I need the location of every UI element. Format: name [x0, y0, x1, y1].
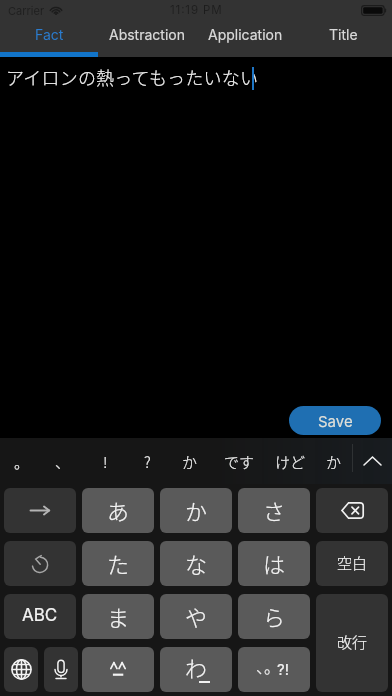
- staticText: は: [263, 547, 286, 579]
- button[interactable]: 、: [238, 647, 310, 692]
- button[interactable]: !: [84, 438, 126, 484]
- staticText: た: [107, 547, 130, 579]
- staticText: アイロンの熱ってもったいない: [6, 64, 259, 90]
- button[interactable]: ま: [82, 594, 154, 639]
- button[interactable]: Show more candidates: [353, 438, 392, 484]
- button[interactable]: Next candidate: [4, 488, 76, 533]
- button[interactable]: か: [169, 438, 211, 484]
- staticText: ?!: [277, 660, 289, 678]
- staticText: Save: [318, 412, 353, 430]
- staticText: Fact: [35, 26, 64, 43]
- button[interactable]: か: [313, 438, 355, 484]
- staticText: か: [326, 451, 342, 473]
- button[interactable]: や: [160, 594, 232, 639]
- button[interactable]: は: [238, 541, 310, 586]
- button[interactable]: Save: [289, 406, 381, 435]
- button[interactable]: わ: [160, 647, 232, 692]
- staticText: けど: [275, 451, 306, 473]
- button[interactable]: Application: [196, 20, 294, 57]
- staticText: や: [185, 600, 208, 632]
- button[interactable]: 、: [42, 438, 84, 484]
- button[interactable]: [82, 647, 154, 692]
- button[interactable]: さ: [238, 488, 310, 533]
- button[interactable]: Title: [294, 20, 392, 57]
- staticText: ABC: [22, 605, 58, 626]
- staticText: です: [224, 451, 255, 473]
- button[interactable]: Abstraction: [98, 20, 196, 57]
- staticText: さ: [263, 494, 286, 526]
- button[interactable]: Dictate: [44, 647, 78, 692]
- staticText: 11:19 PM: [170, 3, 223, 17]
- button[interactable]: あ: [82, 488, 154, 533]
- staticText: 、: [55, 451, 71, 473]
- button[interactable]: Fact: [0, 20, 98, 57]
- staticText: !: [103, 451, 108, 473]
- button[interactable]: です: [218, 438, 260, 484]
- button[interactable]: ?: [126, 438, 168, 484]
- button[interactable]: 空白: [316, 541, 388, 586]
- button[interactable]: た: [82, 541, 154, 586]
- staticText: か: [185, 494, 208, 526]
- staticText: ら: [263, 600, 286, 632]
- staticText: Carrier: [8, 4, 45, 17]
- staticText: な: [185, 547, 208, 579]
- staticText: ?: [144, 451, 151, 473]
- staticText: Abstraction: [109, 26, 185, 43]
- staticText: 、: [256, 654, 267, 677]
- button[interactable]: Backspace: [316, 488, 388, 533]
- staticText: 空白: [337, 552, 368, 574]
- staticText: か: [182, 451, 198, 473]
- button[interactable]: か: [160, 488, 232, 533]
- staticText: Title: [329, 26, 358, 43]
- staticText: 。: [264, 654, 277, 677]
- staticText: 改行: [337, 631, 368, 653]
- staticText: あ: [107, 494, 130, 526]
- button[interactable]: Undo: [4, 541, 76, 586]
- button[interactable]: 改行: [316, 594, 388, 692]
- staticText: 。: [14, 451, 30, 473]
- staticText: Application: [208, 26, 283, 43]
- button[interactable]: けど: [269, 438, 311, 484]
- button[interactable]: 。: [1, 438, 43, 484]
- button[interactable]: ら: [238, 594, 310, 639]
- button[interactable]: な: [160, 541, 232, 586]
- button[interactable]: Switch keyboard: [4, 647, 38, 692]
- button[interactable]: ABC: [4, 594, 76, 639]
- staticText: わ: [185, 651, 208, 683]
- staticText: ま: [107, 600, 130, 632]
